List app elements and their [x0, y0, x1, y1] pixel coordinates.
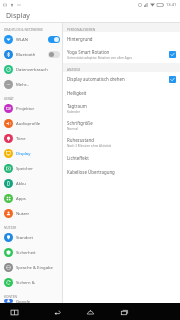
button[interactable]: Nutzer — [0, 206, 62, 221]
staticText: Normal — [67, 127, 78, 131]
button[interactable]: Zuletzt verwendet — [118, 306, 130, 318]
button[interactable]: Kabellose Übertragung — [63, 165, 180, 179]
staticText: Unterstützt adaptive Rotation von allen … — [67, 56, 132, 60]
staticText: Display — [6, 11, 30, 21]
staticText: Lichteffekt — [67, 155, 89, 161]
button[interactable]: Sichern & zurücksetzen — [0, 275, 62, 290]
button[interactable]: Google — [0, 299, 62, 303]
staticText: Tagtraum — [67, 103, 87, 109]
button[interactable]: Hintergrund — [63, 32, 180, 46]
button[interactable]: Lichteffekt — [63, 151, 180, 165]
staticText: Akku — [16, 181, 60, 187]
staticText: Töne — [16, 136, 60, 142]
staticText: KONTEN — [4, 295, 17, 299]
staticText: Mehr... — [16, 82, 60, 88]
button[interactable]: Bluetooth — [0, 47, 62, 62]
button[interactable]: Ruhezustand — [63, 134, 180, 151]
staticText: Ruhezustand — [67, 137, 94, 143]
staticText: NUTZER — [4, 226, 17, 230]
staticText: Kabellose Übertragung — [67, 169, 115, 175]
staticText: Audioprofile — [16, 121, 60, 127]
staticText: Schriftgröße — [67, 120, 93, 126]
button[interactable]: Audioprofile — [0, 116, 62, 131]
staticText: Display automatisch drehen — [67, 76, 125, 82]
staticText: Nach 3 Minuten ohne Aktivität — [67, 144, 111, 148]
staticText: DRAHTLOS & NETZWERKE — [4, 28, 43, 32]
staticText: GERÄT — [4, 97, 14, 101]
staticText: Sichern & zurücksetzen — [16, 280, 60, 286]
button[interactable]: Aus — [48, 51, 60, 58]
staticText: Yoga Smart Rotation — [67, 49, 110, 55]
button[interactable]: Schriftgröße — [63, 117, 180, 134]
button[interactable]: Display automatisch drehen — [63, 72, 180, 86]
button[interactable]: Sicherheit — [0, 245, 62, 260]
button[interactable]: Standort — [0, 230, 62, 245]
staticText: 13:41 — [166, 2, 177, 7]
staticText: Sprache & Eingabe — [16, 265, 60, 271]
button[interactable]: Sprache & Eingabe — [0, 260, 62, 275]
button[interactable]: Startbildschirm — [84, 306, 96, 318]
button[interactable]: Aktiviert — [169, 51, 176, 58]
button[interactable]: Akku — [0, 176, 62, 191]
staticText: Kalender — [67, 110, 81, 114]
button[interactable]: Töne — [0, 131, 62, 146]
button[interactable]: WLAN — [0, 32, 62, 47]
button[interactable]: Datenverbrauch — [0, 62, 62, 77]
staticText: Helligkeit — [67, 90, 87, 96]
button[interactable]: Projektor — [0, 101, 62, 116]
button[interactable]: Aktiviert — [169, 76, 176, 83]
button[interactable]: Ein — [48, 36, 60, 43]
button[interactable]: Yoga Smart Rotation — [63, 46, 180, 63]
staticText: Apps — [16, 196, 60, 202]
staticText: Bluetooth — [16, 52, 47, 58]
button[interactable]: Geteilter Bildschirm — [8, 306, 20, 318]
staticText: Datenverbrauch — [16, 67, 60, 73]
staticText: ANZEIGE — [67, 68, 81, 72]
button[interactable]: Display — [0, 146, 62, 161]
button[interactable]: Speicher — [0, 161, 62, 176]
staticText: Standort — [16, 235, 60, 241]
button[interactable]: Zurück — [51, 306, 63, 318]
staticText: Hintergrund — [67, 36, 93, 42]
staticText: Speicher — [16, 166, 60, 172]
staticText: Google — [16, 299, 60, 303]
button[interactable]: Mehr... — [0, 77, 62, 92]
staticText: Projektor — [16, 106, 60, 112]
button[interactable]: Tagtraum — [63, 100, 180, 117]
staticText: Nutzer — [16, 211, 60, 217]
button[interactable]: Helligkeit — [63, 86, 180, 100]
button[interactable]: Apps — [0, 191, 62, 206]
staticText: Display — [16, 151, 60, 157]
staticText: Sicherheit — [16, 250, 60, 256]
staticText: WLAN — [16, 37, 47, 43]
staticText: PERSONALISIEREN — [67, 28, 96, 32]
